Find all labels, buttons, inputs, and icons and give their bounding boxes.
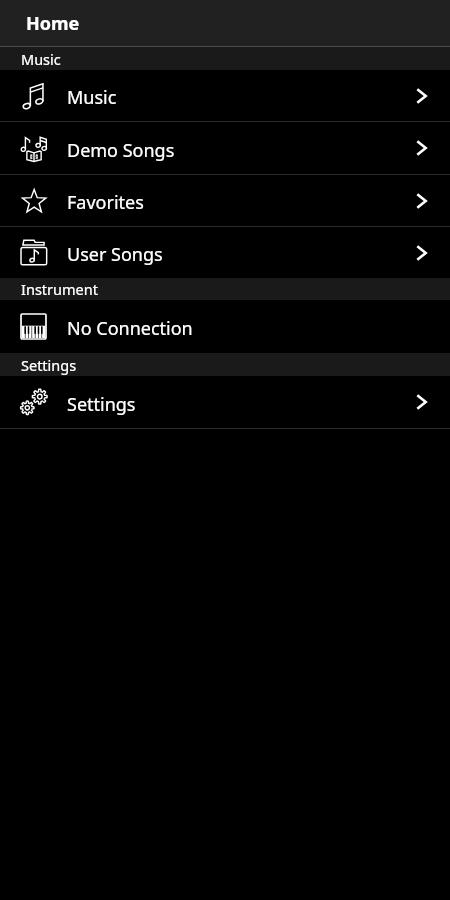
other: No Connection bbox=[20, 313, 47, 340]
other: Open Settings bbox=[416, 376, 427, 428]
staticText: Music bbox=[67, 85, 117, 110]
other: Open User Songs bbox=[416, 227, 427, 278]
staticText: Instrument bbox=[21, 279, 98, 299]
staticText: Settings bbox=[67, 392, 136, 417]
other: Favorites bbox=[20, 187, 47, 214]
staticText: No Connection bbox=[67, 316, 193, 341]
other: Open Demo Songs bbox=[416, 122, 427, 174]
other: Demo Songs bbox=[20, 135, 47, 162]
other: Music bbox=[20, 82, 47, 109]
staticText: Home bbox=[26, 11, 80, 36]
other: User Songs bbox=[20, 239, 47, 266]
button[interactable]: User Songs bbox=[0, 227, 450, 278]
staticText: Demo Songs bbox=[67, 138, 175, 163]
button[interactable]: Music bbox=[0, 70, 450, 121]
other: Settings bbox=[20, 389, 47, 416]
staticText: Settings bbox=[21, 355, 77, 375]
other: Open Music bbox=[416, 70, 427, 121]
button[interactable]: No Connection bbox=[0, 300, 450, 353]
staticText: User Songs bbox=[67, 242, 163, 267]
button[interactable]: Favorites bbox=[0, 175, 450, 226]
button[interactable]: Settings bbox=[0, 376, 450, 428]
staticText: Music bbox=[21, 49, 61, 69]
button[interactable]: Demo Songs bbox=[0, 122, 450, 174]
other: Open Favorites bbox=[416, 175, 427, 226]
staticText: Favorites bbox=[67, 190, 144, 215]
